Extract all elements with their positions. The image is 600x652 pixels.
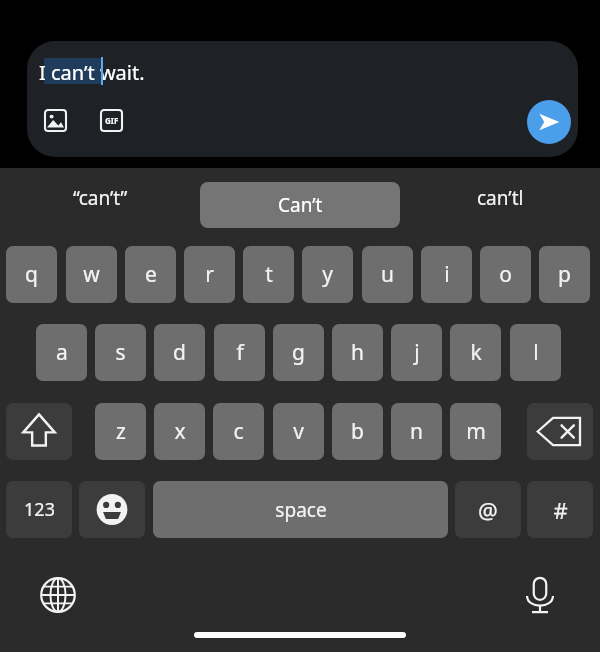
button[interactable]: e (125, 246, 176, 303)
staticText: j (414, 338, 420, 367)
staticText: m (466, 417, 486, 446)
button[interactable]: r (184, 246, 235, 303)
staticText: z (116, 417, 126, 446)
staticText: c (233, 417, 244, 446)
staticText: u (381, 260, 394, 289)
staticText: r (205, 260, 214, 289)
staticText: can’tl (477, 185, 524, 211)
button[interactable]: Shift (6, 403, 72, 460)
staticText: x (174, 417, 186, 446)
button[interactable]: v (273, 403, 324, 460)
staticText: t (265, 260, 273, 289)
button[interactable]: w (66, 246, 117, 303)
button[interactable]: a (36, 324, 87, 381)
staticText: a (56, 338, 68, 367)
staticText: w (83, 260, 100, 289)
staticText: p (558, 260, 571, 289)
staticText: q (25, 260, 38, 289)
button[interactable]: s (95, 324, 146, 381)
button[interactable]: z (95, 403, 146, 460)
button[interactable]: i (421, 246, 472, 303)
staticText: v (293, 417, 304, 446)
staticText: d (173, 338, 186, 367)
staticText: space (275, 497, 327, 523)
button[interactable]: Voice input (516, 571, 564, 619)
button[interactable]: @ (455, 481, 521, 538)
button[interactable]: c (213, 403, 264, 460)
staticText: Can’t (278, 192, 323, 218)
button[interactable]: f (214, 324, 265, 381)
button[interactable]: n (391, 403, 442, 460)
button[interactable]: can’tl (400, 168, 600, 228)
button[interactable]: b (332, 403, 383, 460)
button[interactable]: 123 (6, 481, 72, 538)
button[interactable]: m (450, 403, 501, 460)
staticText: b (351, 417, 364, 446)
button[interactable]: o (480, 246, 531, 303)
staticText: i (444, 260, 450, 289)
button[interactable]: h (332, 324, 383, 381)
button[interactable]: d (154, 324, 205, 381)
button[interactable]: q (6, 246, 57, 303)
button[interactable]: space (153, 481, 448, 538)
staticText: g (292, 338, 305, 367)
button[interactable]: y (302, 246, 353, 303)
button[interactable]: u (362, 246, 413, 303)
button[interactable]: Backspace (527, 403, 593, 460)
button[interactable]: Can’t (200, 182, 400, 228)
button[interactable]: g (273, 324, 324, 381)
staticText: GIF (105, 115, 119, 126)
staticText: l (533, 338, 539, 367)
button[interactable]: j (391, 324, 442, 381)
staticText: 123 (24, 497, 55, 522)
button[interactable]: Emoji (79, 481, 145, 538)
staticText: o (499, 260, 512, 289)
button[interactable]: “can’t” (0, 168, 200, 228)
button[interactable]: l (510, 324, 561, 381)
button[interactable]: k (450, 324, 501, 381)
staticText: k (470, 338, 482, 367)
button[interactable]: # (527, 481, 593, 538)
button[interactable]: t (243, 246, 294, 303)
button[interactable]: Send (527, 100, 571, 144)
staticText: y (322, 260, 333, 289)
staticText: h (351, 338, 364, 367)
staticText: e (145, 260, 157, 289)
button[interactable]: p (539, 246, 590, 303)
button[interactable]: Switch language (34, 571, 82, 619)
button[interactable]: x (154, 403, 205, 460)
staticText: s (115, 338, 126, 367)
staticText: I can’t wait. (39, 59, 145, 86)
button[interactable]: Insert GIF (97, 106, 125, 134)
button[interactable]: I can’t wait. (27, 41, 578, 157)
staticText: n (410, 417, 423, 446)
button[interactable]: Insert image (41, 106, 69, 134)
staticText: f (236, 338, 244, 367)
staticText: @ (478, 495, 498, 525)
staticText: “can’t” (73, 185, 128, 211)
staticText: # (553, 495, 568, 525)
